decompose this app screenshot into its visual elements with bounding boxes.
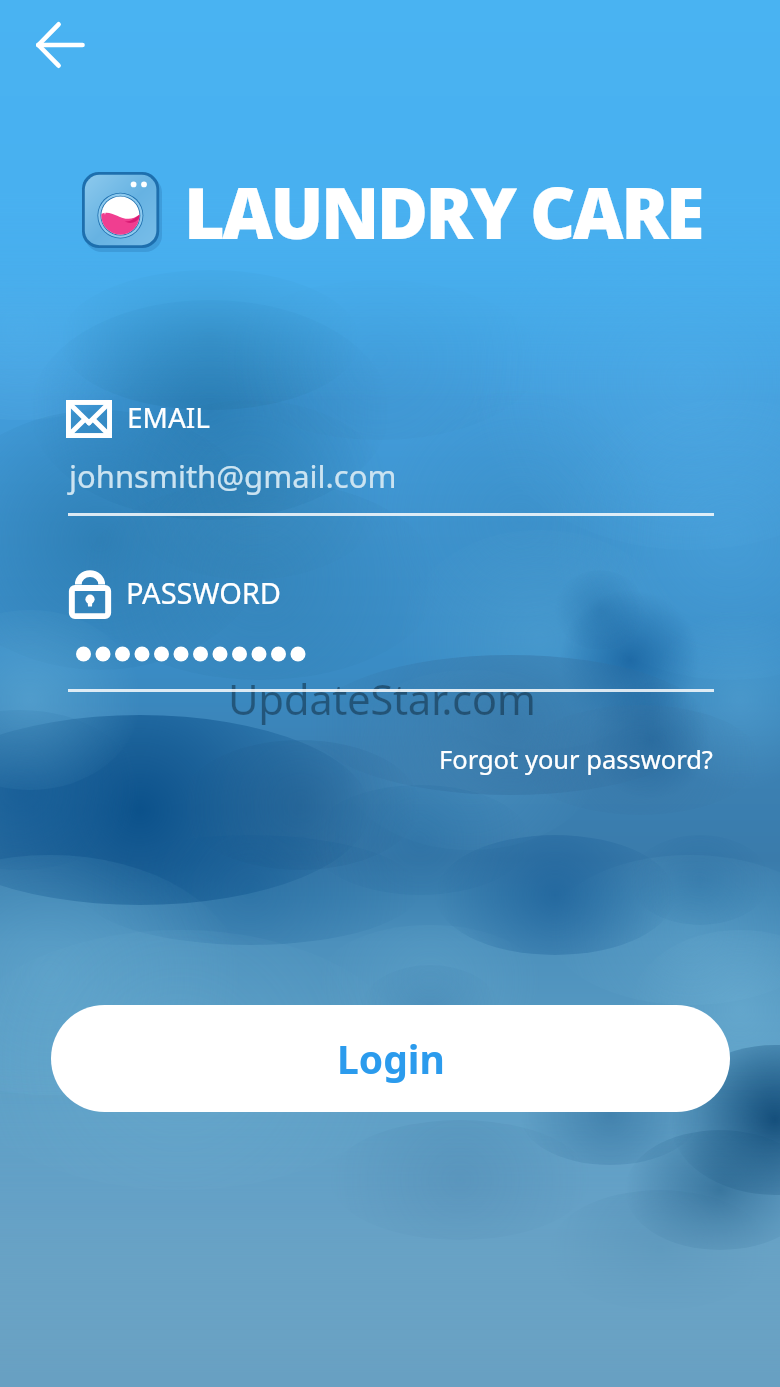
staticText: EMAIL (127, 398, 211, 436)
button[interactable]: Back (31, 16, 89, 74)
staticText: LAUNDRY CARE (184, 164, 702, 259)
staticText: Login (337, 1032, 445, 1085)
staticText: Forgot your password? (439, 742, 713, 777)
button[interactable]: Login (51, 1005, 730, 1112)
staticText: johnsmith@gmail.com (69, 455, 397, 497)
staticText: PASSWORD (126, 573, 282, 612)
staticText: UpdateStar.com (228, 670, 536, 727)
button[interactable]: Forgot your password? (439, 742, 713, 777)
